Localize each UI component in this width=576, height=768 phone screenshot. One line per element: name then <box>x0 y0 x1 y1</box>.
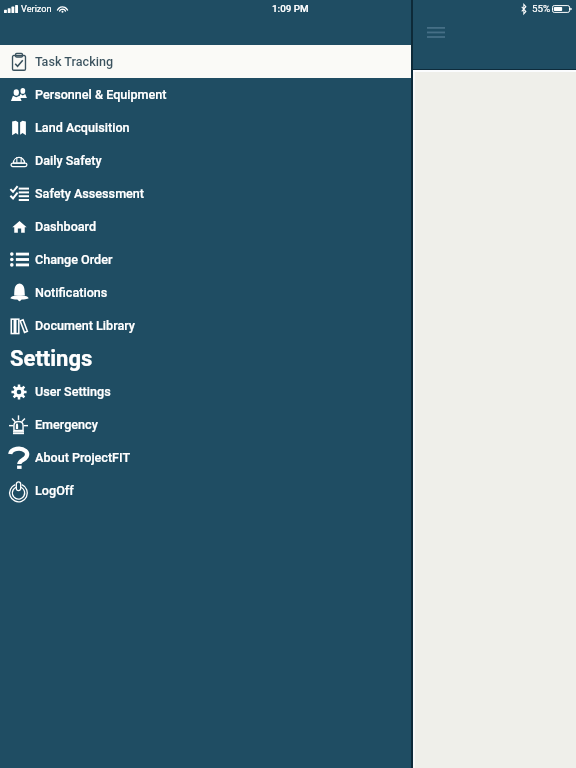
staticText: About ProjectFIT <box>35 450 131 465</box>
button[interactable]: About ProjectFIT <box>0 441 411 474</box>
button[interactable]: Emergency <box>0 408 411 441</box>
button[interactable]: Open navigation drawer <box>420 16 452 48</box>
staticText: Land Acquisition <box>35 120 130 135</box>
staticText: LogOff <box>35 483 74 498</box>
staticText: Safety Assessment <box>35 186 145 201</box>
button[interactable]: Dashboard <box>0 210 411 243</box>
staticText: Emergency <box>35 417 98 432</box>
button[interactable]: Notifications <box>0 276 411 309</box>
button[interactable]: Document Library <box>0 309 411 342</box>
button[interactable]: Change Order <box>0 243 411 276</box>
staticText: 1:09 PM <box>272 3 309 14</box>
staticText: Document Library <box>35 318 135 333</box>
button[interactable]: Safety Assessment <box>0 177 411 210</box>
staticText: Settings <box>10 346 93 372</box>
staticText: 55% <box>532 3 551 14</box>
staticText: Personnel & Equipment <box>35 87 167 102</box>
button[interactable]: LogOff <box>0 474 411 507</box>
staticText: Daily Safety <box>35 153 102 168</box>
button[interactable]: Daily Safety <box>0 144 411 177</box>
button[interactable]: User Settings <box>0 375 411 408</box>
staticText: Change Order <box>35 252 113 267</box>
staticText: User Settings <box>35 384 111 399</box>
button[interactable]: Personnel & Equipment <box>0 78 411 111</box>
staticText: Notifications <box>35 285 108 300</box>
staticText: Dashboard <box>35 219 97 234</box>
button[interactable]: Land Acquisition <box>0 111 411 144</box>
staticText: Verizon <box>21 3 52 14</box>
staticText: Task Tracking <box>35 54 114 69</box>
button[interactable]: Task Tracking <box>0 45 411 78</box>
